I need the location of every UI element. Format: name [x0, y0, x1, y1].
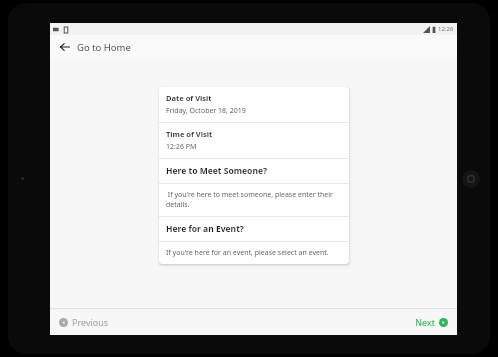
button[interactable]: Previous	[57, 313, 111, 331]
staticText: 12:26	[438, 25, 454, 33]
button[interactable]: Next	[413, 313, 450, 331]
staticText: Go to Home	[77, 41, 131, 54]
staticText: Here for an Event?	[166, 223, 244, 235]
staticText: Date of Visit	[166, 93, 212, 103]
staticText: Previous	[72, 316, 109, 328]
button[interactable]: Date of Visit	[159, 87, 349, 122]
button[interactable]: If you're here for an event, please sele…	[159, 242, 349, 264]
staticText: Friday, October 18, 2019	[166, 106, 246, 116]
button[interactable]: Back	[50, 35, 457, 59]
button[interactable]: Here for an Event?	[159, 217, 349, 241]
staticText: If you're here to meet someone, please e…	[166, 190, 342, 210]
button[interactable]: If you're here to meet someone, please e…	[159, 184, 349, 216]
staticText: Here to Meet Someone?	[166, 165, 268, 177]
staticText: If you're here for an event, please sele…	[166, 248, 329, 258]
staticText: 12:26 PM	[166, 142, 197, 152]
other: Back	[58, 40, 72, 54]
staticText: Time of Visit	[166, 129, 213, 139]
button[interactable]: Here to Meet Someone?	[159, 159, 349, 183]
button[interactable]: Time of Visit	[159, 123, 349, 158]
staticText: Next	[415, 316, 435, 328]
